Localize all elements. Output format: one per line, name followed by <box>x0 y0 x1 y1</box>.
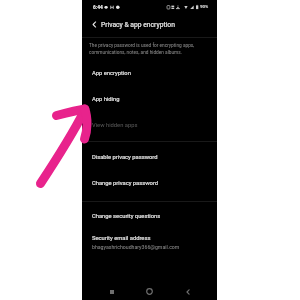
staticText: App encryption <box>92 70 131 77</box>
button[interactable]: Change security questions <box>82 203 217 229</box>
button[interactable]: Change privacy password <box>82 170 217 196</box>
staticText: Change privacy password <box>92 180 159 187</box>
staticText: Disable privacy password <box>92 154 158 161</box>
button[interactable]: Security email address <box>82 229 217 255</box>
staticText: bhagyashrichoudhary366@gmail.com <box>92 244 180 250</box>
button[interactable]: Recents <box>103 283 121 300</box>
button[interactable]: App hiding <box>82 87 217 112</box>
button[interactable]: Back <box>179 283 197 300</box>
staticText: App hiding <box>92 96 120 103</box>
button[interactable]: View hidden apps <box>82 113 217 138</box>
staticText: View hidden apps <box>92 122 138 129</box>
staticText: The privacy password is used for encrypt… <box>89 43 211 55</box>
staticText: Change security questions <box>92 213 161 220</box>
button[interactable]: App encryption <box>82 61 217 86</box>
staticText: 6:44 <box>93 4 103 10</box>
button[interactable]: Disable privacy password <box>82 144 217 170</box>
staticText: 90% <box>200 4 209 9</box>
staticText: Security email address <box>92 235 151 242</box>
staticText: Privacy & app encryption <box>101 21 175 29</box>
button[interactable]: Home <box>140 283 158 300</box>
button[interactable]: Back <box>87 14 101 35</box>
